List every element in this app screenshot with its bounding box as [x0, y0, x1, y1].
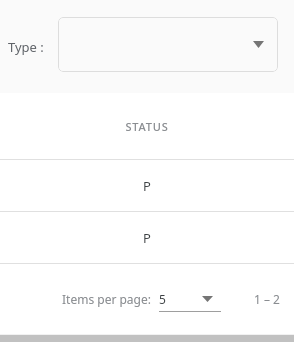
- button[interactable]: Type selector: [58, 17, 278, 72]
- staticText: Items per page:: [62, 291, 151, 307]
- staticText: 5: [159, 291, 166, 307]
- button[interactable]: P: [0, 160, 294, 212]
- staticText: P: [143, 177, 151, 195]
- staticText: P: [143, 229, 151, 247]
- staticText: STATUS: [125, 119, 169, 134]
- staticText: Type :: [8, 38, 44, 56]
- button[interactable]: STATUS: [0, 119, 294, 134]
- button[interactable]: P: [0, 212, 294, 264]
- staticText: 1 – 2: [254, 291, 280, 307]
- button[interactable]: Items per page: [159, 286, 221, 312]
